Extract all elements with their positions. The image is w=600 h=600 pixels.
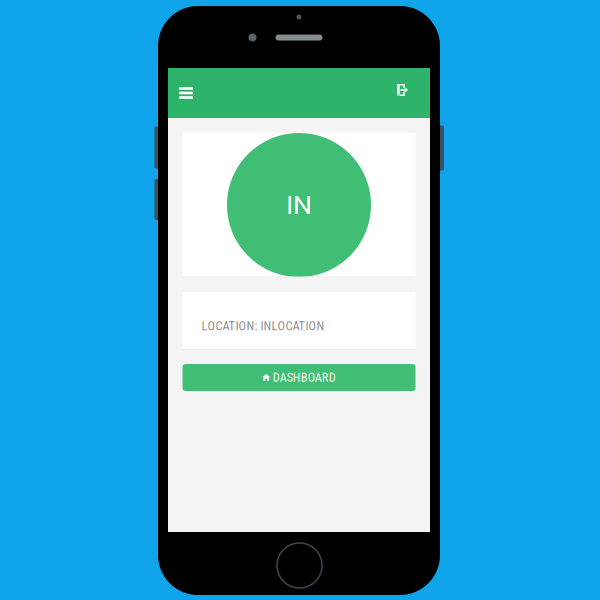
button[interactable]: Sign out bbox=[382, 68, 430, 118]
staticText: IN bbox=[286, 189, 312, 221]
staticText: LOCATION: INLOCATION bbox=[201, 319, 324, 333]
button[interactable]: DASHBOARD bbox=[182, 364, 415, 391]
staticText: DASHBOARD bbox=[273, 370, 336, 385]
button[interactable]: Menu bbox=[168, 68, 207, 118]
